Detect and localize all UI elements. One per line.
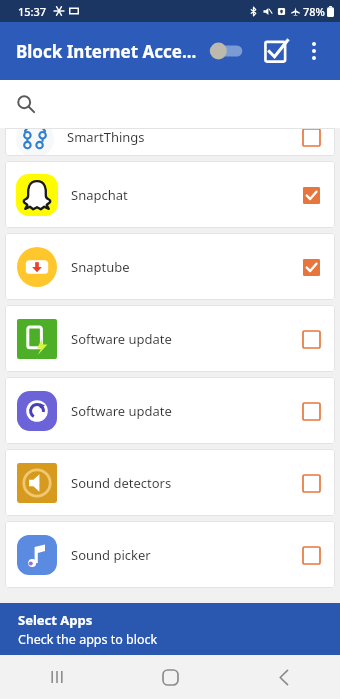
button[interactable]: Checked xyxy=(297,181,325,209)
button[interactable]: Select Apps xyxy=(0,603,340,655)
button[interactable]: Snaptube xyxy=(5,233,335,300)
button[interactable]: Sound detectors xyxy=(5,449,335,516)
staticText: Software update xyxy=(71,330,297,348)
button[interactable]: Software update xyxy=(5,305,335,372)
button[interactable]: Recent apps xyxy=(0,655,114,699)
staticText: Snaptube xyxy=(71,258,297,276)
button[interactable]: SmartThings xyxy=(5,128,335,156)
button[interactable]: Search xyxy=(0,80,340,128)
button[interactable]: Unchecked xyxy=(297,397,325,425)
button[interactable]: Unchecked xyxy=(297,325,325,353)
button[interactable]: Unchecked xyxy=(297,541,325,569)
button[interactable]: Unchecked xyxy=(297,128,325,151)
staticText: Snapchat xyxy=(71,186,297,204)
staticText: Block Internet Acce... xyxy=(16,40,197,63)
button[interactable]: Select all xyxy=(259,34,293,68)
button[interactable]: Sound picker xyxy=(5,521,335,588)
staticText: SmartThings xyxy=(67,128,145,146)
button[interactable]: Software update xyxy=(5,377,335,444)
staticText: 78% xyxy=(303,4,325,19)
staticText: Check the apps to block xyxy=(18,631,158,648)
staticText: Software update xyxy=(71,402,297,420)
staticText: Sound picker xyxy=(71,546,297,564)
button[interactable]: Back xyxy=(227,655,340,699)
button[interactable]: Toggle blocking xyxy=(207,37,245,65)
button[interactable]: Unchecked xyxy=(297,469,325,497)
staticText: 15:37 xyxy=(18,4,47,19)
staticText: Select Apps xyxy=(18,611,93,629)
button[interactable]: More options xyxy=(299,36,329,66)
button[interactable]: Snapchat xyxy=(5,161,335,228)
button[interactable]: Checked xyxy=(297,253,325,281)
staticText: Sound detectors xyxy=(71,474,297,492)
button[interactable]: Home xyxy=(114,655,227,699)
